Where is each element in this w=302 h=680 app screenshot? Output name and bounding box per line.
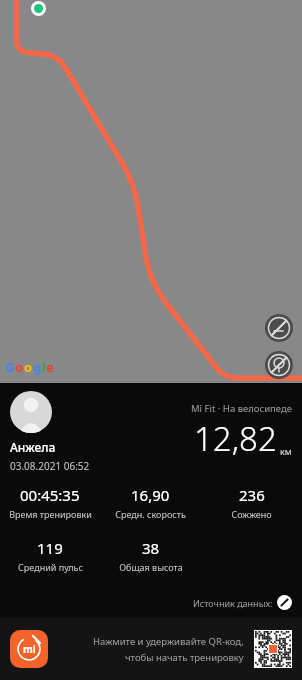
staticText: Анжела <box>10 439 56 455</box>
staticText: Сожжено <box>231 508 272 520</box>
staticText: 38 <box>142 538 160 558</box>
staticText: Общая высота <box>119 561 183 573</box>
staticText: Нажмите и удерживайте QR-код, <box>93 635 244 648</box>
staticText: e <box>46 358 54 376</box>
staticText: mi <box>23 642 36 656</box>
staticText: 03.08.2021 06:52 <box>10 459 90 471</box>
staticText: 00:45:35 <box>20 485 80 505</box>
button[interactable]: Map layers <box>265 351 293 379</box>
staticText: Средн. скорость <box>115 508 186 520</box>
staticText: Mi Fit · На велосипеде <box>191 402 292 415</box>
staticText: Время тренировки <box>9 508 92 520</box>
staticText: 236 <box>239 485 265 505</box>
staticText: 119 <box>37 538 63 558</box>
staticText: o <box>15 358 24 376</box>
staticText: 12,82 <box>194 416 277 461</box>
button[interactable]: QR code <box>254 630 292 668</box>
button[interactable]: Hide route <box>265 314 293 342</box>
button[interactable]: Data source <box>277 595 292 610</box>
staticText: o <box>24 358 33 376</box>
staticText: l <box>42 358 46 376</box>
staticText: чтобы начать тренировку <box>125 651 244 664</box>
staticText: g <box>33 358 42 376</box>
staticText: 16,90 <box>131 485 170 505</box>
staticText: Средний пульс <box>18 561 83 573</box>
button[interactable]: Mi Fit <box>10 630 48 668</box>
staticText: км <box>280 445 292 457</box>
staticText: Источник данных: <box>193 597 273 609</box>
staticText: G <box>5 358 15 376</box>
